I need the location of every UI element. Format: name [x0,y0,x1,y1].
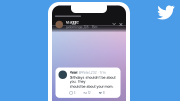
staticText: should be about your mom. [69,84,113,88]
button[interactable]: Patel [55,67,120,98]
staticText: Birthdays shouldn't be about you. They [69,75,115,84]
staticText: @Patel_232 · 17m [79,71,106,75]
staticText: Patel [69,70,77,75]
staticText: @dominge_128 · 15m [65,25,97,29]
staticText: 8 [103,91,105,95]
staticText: Maggie [65,20,78,25]
button[interactable]: Maggie [52,5,126,32]
button[interactable]: Twitter [157,3,175,21]
staticText: 12 [88,91,91,95]
staticText: 4 [73,91,75,95]
